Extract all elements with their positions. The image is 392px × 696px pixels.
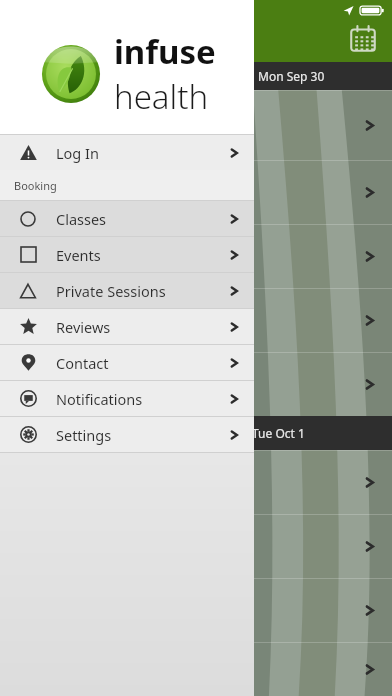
button[interactable]: Contact — [0, 345, 254, 380]
staticText: Contact — [56, 353, 109, 373]
staticText: health — [114, 74, 209, 119]
staticText: Notifications — [56, 389, 143, 409]
staticText: Booking — [14, 178, 57, 193]
button[interactable]: Events — [0, 237, 254, 272]
staticText: Events — [56, 245, 101, 265]
button[interactable] — [0, 578, 392, 642]
button[interactable] — [0, 288, 392, 352]
button[interactable] — [0, 352, 392, 416]
button[interactable] — [0, 514, 392, 578]
button[interactable] — [0, 224, 392, 288]
button[interactable]: Calendar — [346, 22, 380, 56]
button[interactable]: Classes — [0, 201, 254, 236]
button[interactable] — [0, 90, 392, 160]
button[interactable]: Reviews — [0, 309, 254, 344]
staticText: Tue Oct 1 — [252, 425, 305, 441]
staticText: Private Sessions — [56, 281, 166, 301]
button[interactable] — [0, 160, 392, 224]
button[interactable]: Settings — [0, 417, 254, 452]
button[interactable] — [0, 450, 392, 514]
button[interactable]: Log In — [0, 135, 254, 170]
staticText: Reviews — [56, 317, 111, 337]
button[interactable]: Private Sessions — [0, 273, 254, 308]
staticText: Log In — [56, 143, 99, 163]
staticText: Mon Sep 30 — [258, 68, 325, 84]
staticText: Settings — [56, 425, 112, 445]
button[interactable] — [0, 642, 392, 696]
staticText: infuse — [114, 29, 216, 74]
button[interactable]: Notifications — [0, 381, 254, 416]
staticText: Classes — [56, 209, 107, 229]
